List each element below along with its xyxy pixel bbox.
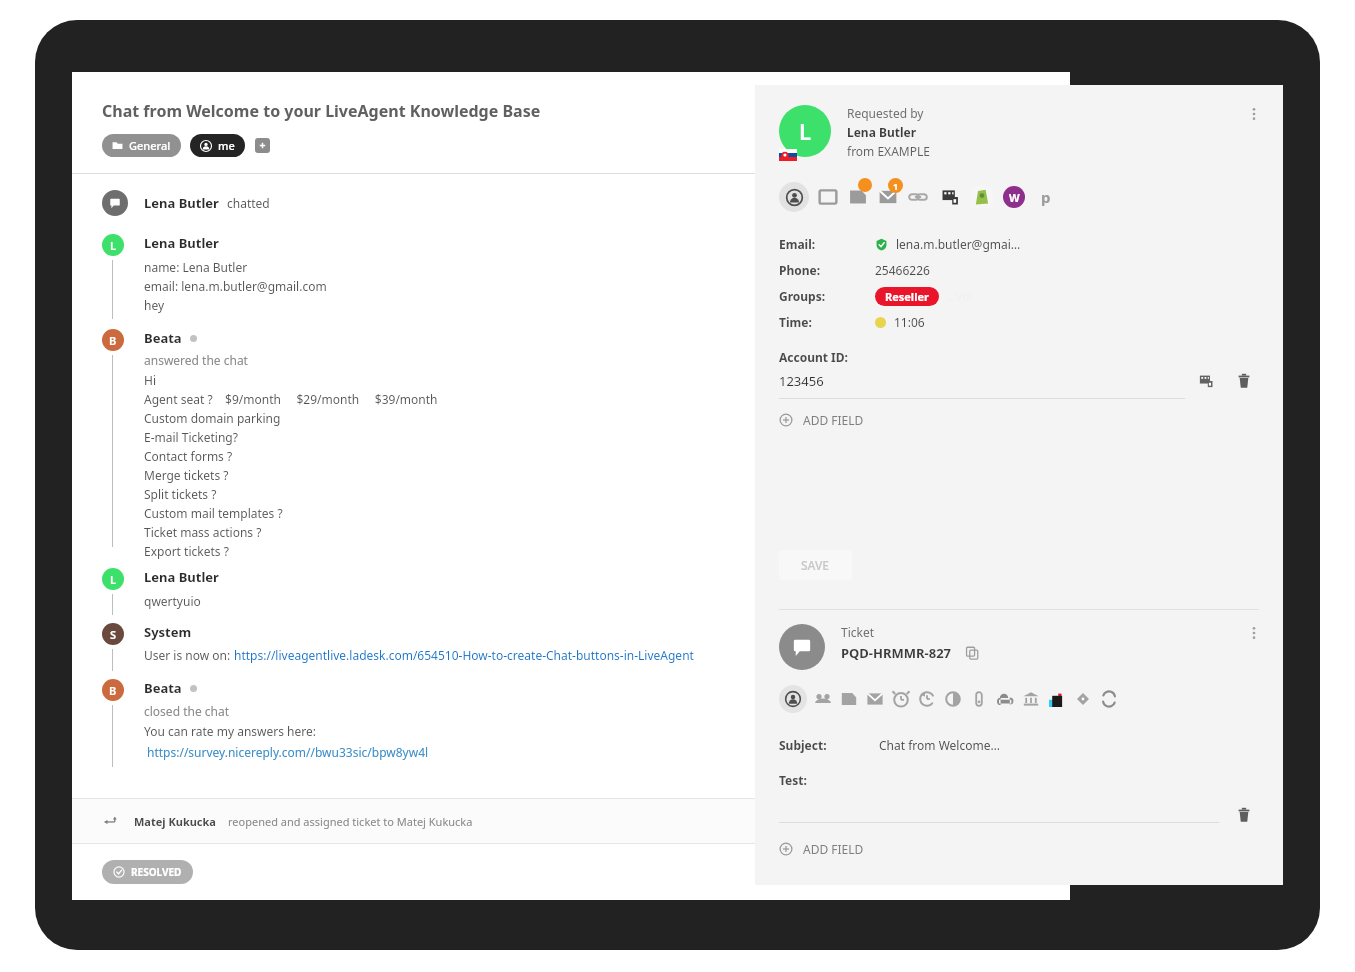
staticText: Custom mail templates ? [144, 505, 283, 521]
staticText: Email: [779, 236, 875, 252]
staticText: L [799, 116, 812, 146]
staticText: Beata [144, 679, 182, 697]
button[interactable]: Contact [779, 182, 809, 212]
button[interactable]: More options [1245, 105, 1263, 123]
staticText: hey [144, 297, 165, 313]
staticText: p [1041, 187, 1051, 207]
staticText: B [109, 333, 117, 348]
staticText: name: Lena Butler [144, 259, 248, 275]
button[interactable]: https://liveagentlive.ladesk.com/654510-… [234, 647, 694, 663]
button[interactable]: Tickets [817, 186, 839, 208]
staticText: closed the chat [144, 703, 230, 719]
button[interactable]: Reminder [891, 689, 911, 709]
button[interactable]: RESOLVED [102, 860, 193, 884]
staticText: reopened and assigned ticket to Matej Ku… [228, 814, 473, 829]
button[interactable]: Add field [779, 842, 793, 856]
staticText: User is now on: [144, 647, 234, 663]
staticText: RESOLVED [131, 865, 182, 879]
button[interactable]: Contacts [813, 689, 833, 709]
staticText: Contact forms ? [144, 448, 233, 464]
button[interactable]: History [917, 689, 937, 709]
button[interactable]: Reopened [102, 813, 118, 829]
button[interactable]: SAVE [779, 550, 852, 580]
staticText: Export tickets ? [144, 543, 229, 559]
staticText: ADD FIELD [803, 841, 864, 857]
button[interactable]: Delete field [1235, 806, 1253, 824]
staticText: answered the chat [144, 352, 248, 368]
staticText: lena.m.butler@gmai… [896, 236, 1021, 252]
button[interactable]: Notes [839, 689, 859, 709]
staticText: Time: [779, 314, 875, 330]
staticText: W [1009, 190, 1020, 205]
staticText: me [218, 138, 235, 153]
staticText: Ticket [841, 624, 875, 640]
staticText: Custom domain parking [144, 410, 281, 426]
button[interactable]: Sync [1099, 689, 1119, 709]
button[interactable]: Tags [1073, 689, 1093, 709]
button[interactable]: Integration [1047, 689, 1067, 709]
button[interactable]: Requester [779, 685, 807, 713]
button[interactable]: Delete field [1235, 372, 1253, 390]
staticText: S [110, 627, 117, 642]
staticText: 123456 [779, 372, 824, 390]
staticText: Chat from Welcome to your LiveAgent Know… [102, 100, 541, 122]
button[interactable]: me [190, 134, 245, 157]
staticText: E-mail Ticketing? [144, 429, 238, 445]
staticText: Test: [779, 772, 807, 788]
button[interactable]: Notes [847, 186, 869, 208]
staticText: L [110, 238, 117, 253]
button[interactable]: Insert predefined answer [1197, 372, 1215, 390]
staticText: Chat from Welcome… [879, 737, 1000, 753]
button[interactable]: Add field [779, 832, 1263, 866]
staticText: Phone: [779, 262, 875, 278]
staticText: 25466226 [875, 262, 930, 278]
staticText: Groups: [779, 288, 875, 304]
button[interactable]: Copy ticket ID [964, 645, 980, 661]
staticText: chatted [227, 195, 270, 211]
staticText: from EXAMPLE [847, 143, 930, 159]
staticText: Split tickets ? [144, 486, 217, 502]
staticText: Requested by [847, 105, 924, 121]
staticText: Lena Butler [144, 194, 219, 212]
staticText: Lena Butler [144, 568, 219, 586]
button[interactable]: WooCommerce [1003, 186, 1025, 208]
staticText: qwertyuio [144, 593, 201, 609]
button[interactable]: Reopened [102, 799, 1070, 843]
button[interactable]: Messages [877, 186, 899, 208]
button[interactable]: Add field [779, 413, 793, 427]
staticText: Merge tickets ? [144, 467, 229, 483]
staticText: PQD-HRMMR-827 [841, 644, 952, 662]
button[interactable]: Add field [779, 403, 1263, 437]
staticText: Account ID: [779, 349, 848, 365]
staticText: Lena Butler [847, 124, 917, 140]
staticText: L [110, 572, 117, 587]
button[interactable]: Mailchimp [939, 186, 961, 208]
staticText: Ticket mass actions ? [144, 524, 262, 540]
staticText: 1 [893, 180, 899, 192]
button[interactable]: Shopify [971, 186, 993, 208]
staticText: Matej Kukucka [134, 814, 216, 829]
staticText: B [109, 683, 117, 698]
staticText: System [144, 623, 192, 641]
button[interactable]: PipeDrive [1035, 186, 1057, 208]
staticText: email: lena.m.butler@gmail.com [144, 278, 327, 294]
staticText: Beata [144, 329, 182, 347]
staticText: Hi [144, 372, 156, 388]
button[interactable]: Mail [865, 689, 885, 709]
button[interactable]: Ticket options [1245, 624, 1263, 642]
button[interactable]: Add tag [255, 138, 270, 153]
staticText: Subject: [779, 737, 879, 753]
button[interactable]: Links [907, 186, 929, 208]
button[interactable]: SLA [943, 689, 963, 709]
button[interactable]: Attachments [969, 689, 989, 709]
staticText: Lena Butler [144, 234, 219, 252]
staticText: Reseller [885, 289, 929, 304]
staticText: SAVE [801, 557, 830, 573]
button[interactable]: Billing [1021, 689, 1041, 709]
button[interactable]: https://survey.nicereply.com//bwu33sic/b… [147, 744, 429, 760]
button[interactable]: General [102, 134, 181, 157]
staticText: You can rate my answers here: [144, 723, 316, 739]
button[interactable]: Reseller [875, 287, 939, 306]
button[interactable]: Cloud [995, 689, 1015, 709]
